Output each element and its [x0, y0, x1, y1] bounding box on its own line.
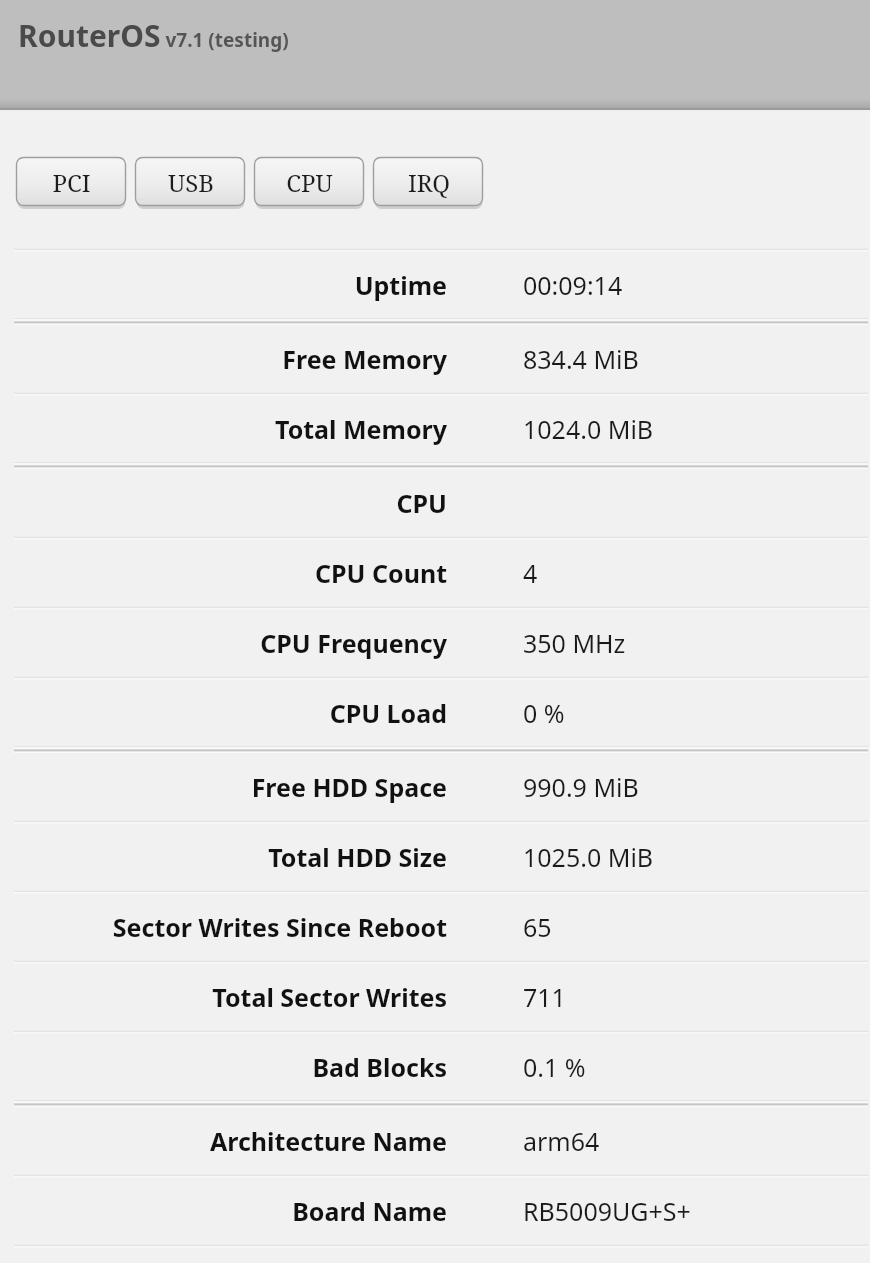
staticText: IRQ	[408, 166, 450, 199]
staticText: Bad Blocks	[312, 1050, 447, 1084]
staticText: 711	[523, 980, 566, 1014]
button[interactable]: Sector Writes Since Reboot	[0, 894, 870, 960]
staticText: 0.1 %	[523, 1050, 586, 1084]
button[interactable]: Total Sector Writes	[0, 964, 870, 1030]
staticText: CPU	[396, 486, 447, 520]
staticText: 4	[523, 556, 538, 590]
staticText: Sector Writes Since Reboot	[112, 910, 447, 944]
button[interactable]: IRQ	[373, 157, 484, 209]
button[interactable]: USB	[135, 157, 246, 209]
staticText: 00:09:14	[523, 268, 623, 302]
staticText: arm64	[523, 1124, 600, 1158]
staticText: 0 %	[523, 696, 565, 730]
staticText: Total HDD Size	[268, 840, 447, 874]
staticText: CPU Count	[314, 556, 447, 590]
staticText: CPU Frequency	[260, 626, 447, 660]
staticText: 65	[523, 910, 552, 944]
button[interactable]: Total HDD Size	[0, 824, 870, 890]
button[interactable]: CPU Count	[0, 540, 870, 606]
button[interactable]: Architecture Name	[0, 1108, 870, 1174]
staticText: 834.4 MiB	[523, 342, 639, 376]
button[interactable]: Bad Blocks	[0, 1034, 870, 1100]
button[interactable]: PCI	[16, 157, 127, 209]
staticText: CPU	[286, 166, 333, 199]
button[interactable]: CPU	[0, 470, 870, 536]
button[interactable]: Free Memory	[0, 326, 870, 392]
staticText: Free Memory	[282, 342, 447, 376]
button[interactable]: Uptime	[0, 252, 870, 318]
staticText: 990.9 MiB	[523, 770, 639, 804]
staticText: Total Memory	[274, 412, 447, 446]
staticText: CPU Load	[329, 696, 447, 730]
staticText: RouterOS v7.1 (testing)	[18, 15, 289, 56]
button[interactable]: Board Name	[0, 1178, 870, 1244]
staticText: 1024.0 MiB	[523, 412, 654, 446]
staticText: Uptime	[354, 268, 447, 302]
staticText: Architecture Name	[209, 1124, 447, 1158]
button[interactable]: Total Memory	[0, 396, 870, 462]
button[interactable]: CPU	[254, 157, 365, 209]
staticText: Free HDD Space	[251, 770, 447, 804]
button[interactable]: CPU Load	[0, 680, 870, 746]
button[interactable]: CPU Frequency	[0, 610, 870, 676]
button[interactable]: Free HDD Space	[0, 754, 870, 820]
staticText: 1025.0 MiB	[523, 840, 654, 874]
staticText: USB	[168, 166, 214, 199]
staticText: Board Name	[292, 1194, 447, 1228]
staticText: PCI	[52, 166, 91, 199]
staticText: Total Sector Writes	[212, 980, 447, 1014]
staticText: 350 MHz	[523, 626, 626, 660]
staticText: RB5009UG+S+	[523, 1194, 691, 1228]
